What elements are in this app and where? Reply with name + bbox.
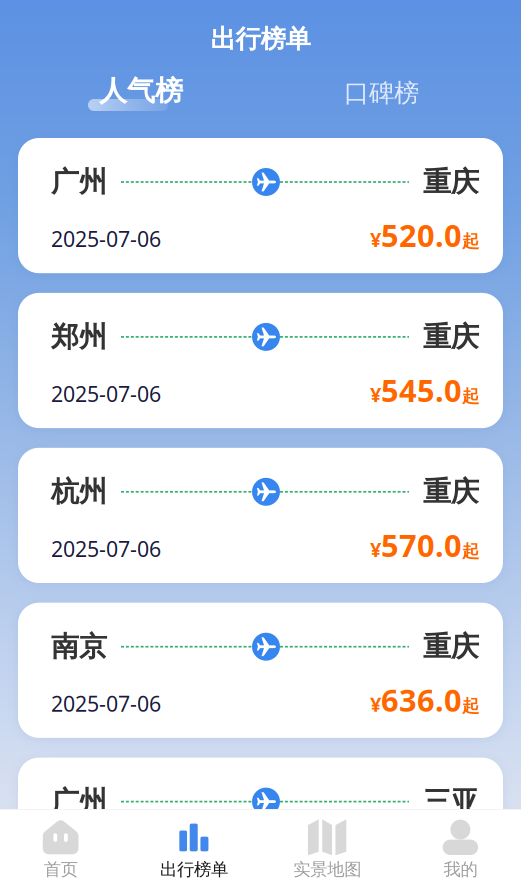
button[interactable]: 杭州 [18,448,503,583]
button[interactable]: 首页 [0,820,127,880]
staticText: 人气榜 [99,74,183,108]
staticText: 三亚 [423,784,479,819]
button[interactable]: 南京 [18,603,503,738]
staticText: 重庆 [423,165,479,199]
staticText: ¥ [370,226,381,253]
staticText: 首页 [44,859,78,880]
staticText: 我的 [443,859,477,880]
staticText: 2025-07-06 [51,380,161,408]
button[interactable]: 我的 [394,820,521,880]
staticText: 郑州 [51,320,107,354]
staticText: 起 [462,231,479,252]
button[interactable]: 广州 [18,138,503,273]
staticText: 出行榜单 [210,23,310,54]
staticText: 700.0 [381,834,462,875]
staticText: 2025-07-06 [51,225,161,253]
staticText: 起 [462,540,479,562]
staticText: 2025-07-06 [51,689,161,718]
staticText: 520.0 [381,215,462,255]
staticText: 广州 [51,165,107,199]
staticText: 2025-07-06 [51,844,161,873]
button[interactable]: 实景地图 [260,820,394,880]
staticText: 重庆 [423,475,479,509]
staticText: 南京 [51,629,107,664]
staticText: 起 [462,386,479,407]
button[interactable]: 人气榜 [88,75,183,111]
staticText: 出行榜单 [160,859,228,880]
button[interactable]: 郑州 [18,293,503,428]
staticText: 起 [462,850,479,872]
button[interactable]: 广州 [18,758,503,887]
staticText: 636.0 [381,679,462,720]
button[interactable]: 口碑榜 [344,75,419,111]
staticText: 口碑榜 [344,77,419,108]
staticText: 起 [462,695,479,717]
staticText: 2025-07-06 [51,534,161,563]
staticText: 广州 [51,784,107,819]
staticText: ¥ [370,381,381,408]
staticText: ¥ [370,536,381,562]
staticText: 重庆 [423,320,479,354]
staticText: 570.0 [381,525,462,565]
staticText: ¥ [370,691,381,717]
button[interactable]: 出行榜单 [127,820,260,880]
staticText: 重庆 [423,629,479,664]
staticText: 杭州 [51,475,107,509]
staticText: 实景地图 [293,859,361,880]
staticText: 545.0 [381,370,462,410]
